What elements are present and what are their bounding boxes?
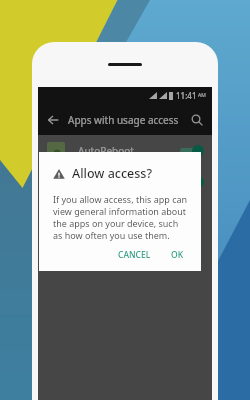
staticText: If you allow access, this app can view g…: [53, 193, 189, 241]
button[interactable]: OK: [166, 246, 189, 264]
button[interactable]: Search: [182, 105, 212, 135]
staticText: AM: [198, 92, 206, 99]
staticText: AutoReboot: [78, 144, 134, 158]
button[interactable]: EngineerMode: [38, 166, 212, 197]
staticText: Apps with usage access: [68, 113, 179, 127]
button[interactable]: Toggle AutoReboot: [178, 144, 204, 158]
staticText: 11:41: [176, 90, 197, 101]
staticText: CANCEL: [118, 249, 151, 261]
staticText: EngineerMode: [78, 175, 147, 189]
button[interactable]: AutoReboot: [38, 135, 212, 166]
button[interactable]: Toggle EngineerMode: [178, 175, 204, 189]
button[interactable]: Back: [38, 105, 68, 135]
staticText: OK: [171, 249, 184, 261]
button[interactable]: CANCEL: [113, 246, 156, 264]
staticText: Allow access?: [72, 165, 153, 182]
